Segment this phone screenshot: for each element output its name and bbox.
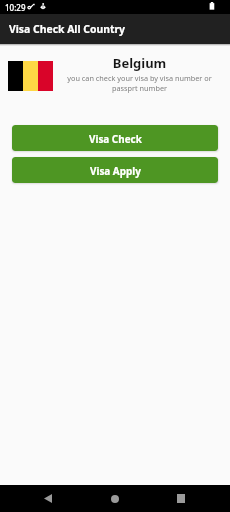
staticText: Visa Check [89, 132, 142, 145]
button[interactable]: Recent apps [169, 485, 193, 512]
button[interactable]: Home [103, 485, 127, 512]
staticText: 10:29 [5, 2, 26, 13]
staticText: Visa Apply [90, 164, 141, 177]
staticText: Belgium [59, 54, 220, 72]
staticText: you can check your visa by visa number o… [59, 73, 220, 93]
staticText: Visa Check All Country [9, 22, 125, 36]
button[interactable]: Back [36, 485, 60, 512]
button[interactable]: Visa Check [12, 125, 218, 151]
button[interactable]: Visa Apply [12, 157, 218, 183]
